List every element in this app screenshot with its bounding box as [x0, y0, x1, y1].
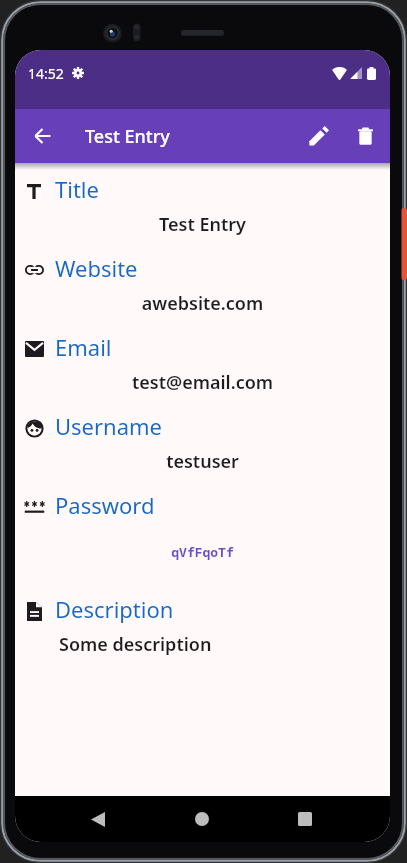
button[interactable]: Website [15, 253, 390, 332]
staticText: Test Entry [85, 124, 170, 149]
staticText: test@email.com [15, 370, 390, 395]
button[interactable]: Back [81, 802, 115, 836]
button[interactable]: Email [15, 332, 390, 411]
staticText: testuser [15, 449, 390, 474]
staticText: Description [55, 594, 174, 624]
staticText: qVfFqoTf [15, 543, 390, 561]
button[interactable]: Home [185, 802, 219, 836]
staticText: Title [55, 174, 99, 204]
button[interactable]: Recents [288, 802, 322, 836]
button[interactable]: Back [20, 114, 64, 158]
button[interactable]: Password [15, 490, 390, 594]
staticText: Some description [59, 632, 212, 657]
button[interactable]: Description [15, 594, 390, 657]
button[interactable]: Edit [296, 113, 342, 159]
staticText: Website [55, 253, 138, 283]
staticText: awebsite.com [15, 291, 390, 316]
staticText: Username [55, 411, 163, 441]
staticText: Password [55, 490, 155, 520]
button[interactable]: Username [15, 411, 390, 490]
button[interactable]: Title [15, 174, 390, 253]
staticText: Email [55, 332, 112, 362]
staticText: 14:52 [28, 64, 64, 83]
staticText: Test Entry [15, 212, 390, 237]
button[interactable]: Delete [342, 113, 388, 159]
